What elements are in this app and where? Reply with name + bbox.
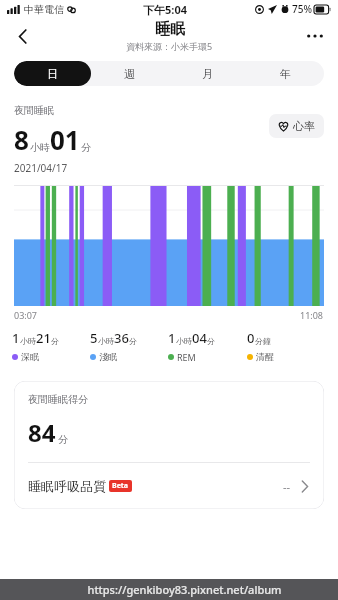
staticText: 分 <box>58 433 68 446</box>
staticText: 小時 <box>98 336 114 346</box>
staticText: 75% <box>292 2 312 16</box>
staticText: 夜間睡眠 <box>14 104 54 117</box>
staticText: 中華電信 <box>24 3 64 16</box>
button[interactable]: 週 <box>91 61 168 86</box>
staticText: REM <box>177 351 196 363</box>
staticText: 小時 <box>30 141 50 154</box>
staticText: 睡眠 <box>155 20 185 39</box>
staticText: 0 <box>247 329 255 347</box>
button[interactable]: 年 <box>246 61 324 86</box>
staticText: 月 <box>202 67 213 81</box>
staticText: 21 <box>36 329 51 347</box>
staticText: 分鐘 <box>255 336 271 346</box>
button[interactable]: Back <box>6 19 40 53</box>
staticText: 清醒 <box>256 351 274 362</box>
staticText: 分 <box>51 336 59 346</box>
staticText: 年 <box>280 67 291 81</box>
staticText: 週 <box>124 67 135 81</box>
staticText: 分 <box>207 336 215 346</box>
staticText: https://genkiboy83.pixnet.net/album <box>87 582 282 597</box>
staticText: 睡眠呼吸品質 <box>28 478 106 494</box>
staticText: Beta <box>112 481 129 491</box>
staticText: 小時 <box>176 336 192 346</box>
staticText: 小時 <box>20 336 36 346</box>
staticText: 分 <box>129 336 137 346</box>
button[interactable]: 睡眠呼吸品質 <box>14 463 324 509</box>
staticText: 下午5:04 <box>143 2 187 17</box>
staticText: 8 <box>14 122 29 157</box>
staticText: 心率 <box>293 119 315 133</box>
staticText: 資料來源：小米手環5 <box>126 40 213 52</box>
button[interactable]: More options <box>298 19 332 53</box>
staticText: 淺眠 <box>99 351 117 362</box>
staticText: 03:07 <box>14 309 38 321</box>
staticText: 日 <box>47 67 58 81</box>
staticText: 1 <box>12 329 20 347</box>
staticText: 1 <box>168 329 176 347</box>
staticText: 36 <box>114 329 129 347</box>
button[interactable]: 心率 <box>269 114 324 138</box>
button[interactable]: 月 <box>168 61 246 86</box>
staticText: 2021/04/17 <box>14 161 68 175</box>
button[interactable]: 日 <box>14 61 91 86</box>
staticText: 5 <box>90 329 98 347</box>
staticText: 04 <box>192 329 207 347</box>
staticText: 84 <box>28 416 56 449</box>
staticText: 01 <box>50 122 80 157</box>
staticText: 深眠 <box>21 351 39 362</box>
staticText: -- <box>283 479 291 494</box>
staticText: 分 <box>81 141 91 154</box>
staticText: 夜間睡眠得分 <box>28 393 88 406</box>
staticText: 11:08 <box>300 309 324 321</box>
